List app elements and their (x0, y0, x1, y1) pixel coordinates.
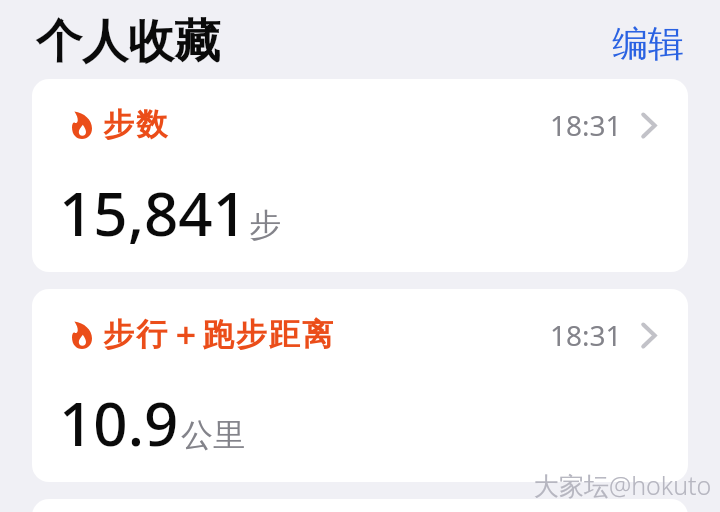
staticText: 18:31 (550, 106, 622, 144)
staticText: 大家坛@hokuto (534, 468, 712, 502)
staticText: 公里 (181, 415, 245, 455)
other: Show details (641, 323, 657, 348)
staticText: 18:31 (550, 316, 622, 354)
other: Activity (72, 321, 92, 349)
staticText: 个人收藏 (36, 13, 220, 71)
button[interactable]: 编辑 (594, 5, 720, 74)
staticText: 步行＋跑步距离 (103, 315, 336, 354)
button[interactable]: Activity (32, 289, 688, 482)
staticText: 15,841 (59, 172, 247, 254)
staticText: 编辑 (612, 21, 684, 66)
other: Activity (72, 111, 92, 139)
staticText: 步 (249, 205, 281, 245)
staticText: 10.9 (59, 382, 179, 464)
other: Show details (641, 113, 657, 138)
button[interactable]: Activity (32, 79, 688, 272)
staticText: 步数 (103, 105, 170, 144)
